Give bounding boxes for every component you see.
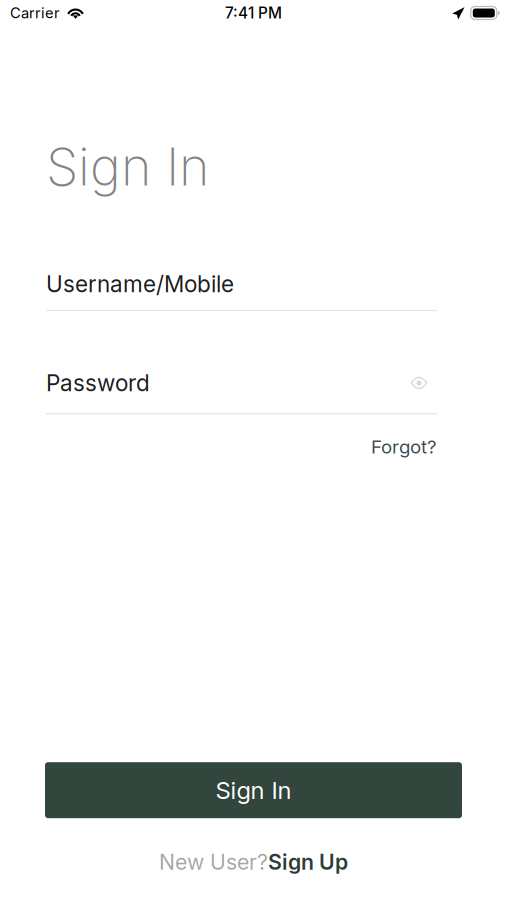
button[interactable]: Username/Mobile (46, 273, 437, 295)
button[interactable]: Password (46, 372, 405, 394)
button[interactable]: New User? (159, 849, 348, 875)
button[interactable]: Forgot? (371, 435, 437, 458)
staticText: Sign Up (268, 849, 348, 875)
staticText: Sign In (215, 776, 291, 805)
staticText: Username/Mobile (46, 270, 234, 298)
staticText: Sign In (46, 135, 209, 198)
staticText: Forgot? (371, 435, 437, 458)
button[interactable]: Sign In (45, 762, 462, 818)
button[interactable]: Show password (405, 372, 437, 394)
staticText: Password (46, 369, 150, 397)
staticText: Carrier (10, 4, 60, 22)
staticText: 7:41 PM (225, 4, 282, 22)
staticText: New User? (159, 849, 268, 875)
